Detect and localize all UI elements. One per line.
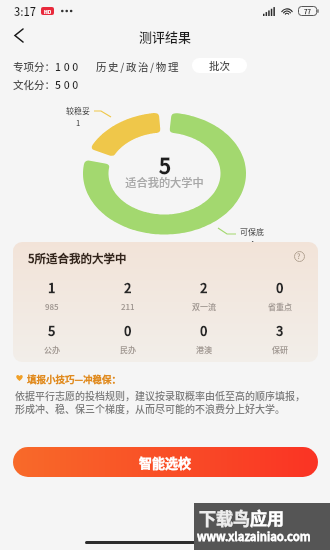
button[interactable]: 智能选校 [13, 447, 318, 477]
button[interactable]: Back [4, 22, 34, 48]
staticText: 港澳 [196, 344, 212, 356]
staticText: 0 [276, 278, 284, 297]
staticText: 依据平行志愿的投档规则，建议按录取概率由低至高的顺序填报， 形成冲、稳、保三个梯… [15, 388, 305, 416]
staticText: 较稳妥 [66, 105, 90, 117]
staticText: 专项分： [13, 59, 55, 74]
staticText: 历史/政治/物理 [96, 59, 180, 74]
staticText: 1 [76, 117, 81, 128]
staticText: 填报小技巧—冲稳保： [27, 372, 122, 386]
staticText: 适合我的大学中 [125, 174, 204, 190]
staticText: 5所适合我的大学中 [28, 250, 127, 267]
staticText: 500 [55, 77, 82, 92]
staticText: 智能选校 [139, 453, 192, 472]
staticText: 文化分： [13, 77, 55, 92]
staticText: 1 [48, 278, 56, 297]
staticText: 省重点 [268, 301, 292, 313]
staticText: 可保底 [240, 226, 264, 238]
staticText: ? [297, 251, 301, 261]
staticText: 保研 [272, 344, 288, 356]
staticText: 5 [159, 150, 171, 180]
staticText: 4 [250, 238, 255, 249]
staticText: 0 [200, 321, 208, 340]
staticText: 100 [55, 59, 82, 74]
staticText: 3:17 [14, 3, 37, 19]
staticText: 2 [200, 278, 208, 297]
button[interactable]: Help [291, 248, 307, 264]
staticText: 0 [124, 321, 132, 340]
staticText: 3 [276, 321, 284, 340]
staticText: 公办 [44, 344, 60, 356]
staticText: 985 [45, 301, 59, 313]
staticText: 211 [121, 301, 135, 313]
staticText: 5 [48, 321, 56, 340]
staticText: 双一流 [192, 301, 216, 313]
staticText: 77 [304, 7, 311, 16]
staticText: 民办 [120, 344, 136, 356]
staticText: 应用 [250, 505, 284, 530]
staticText: HD [44, 8, 52, 15]
staticText: 批次 [209, 58, 230, 73]
staticText: www.xlazainiao.com [197, 528, 311, 545]
staticText: 2 [124, 278, 132, 297]
staticText: 下载鸟 [199, 505, 250, 530]
staticText: 测评结果 [139, 27, 192, 46]
button[interactable]: 批次 [192, 58, 247, 73]
